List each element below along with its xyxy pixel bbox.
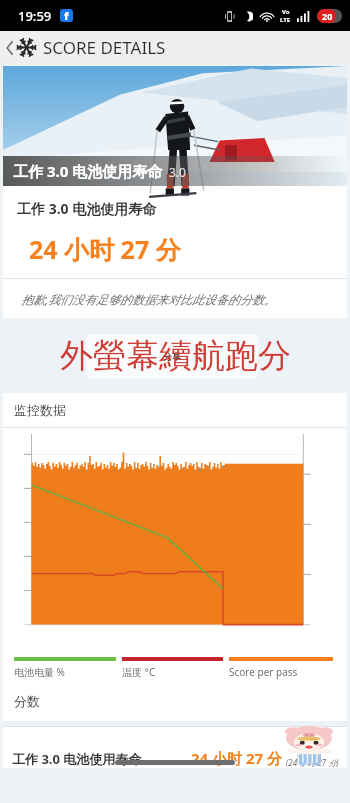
button[interactable]: 工作 3.0 电池使用寿命 [3,748,347,768]
staticText: 工作 3.0 电池使用寿命 [12,750,142,768]
staticText: 分享 [163,351,181,362]
button[interactable]: 分享 [86,334,258,379]
staticText: Score per pass [229,665,298,679]
staticText: 温度 °C [122,665,156,679]
staticText: 24 小时 27 分 [191,748,283,768]
staticText: 抱歉,我们没有足够的数据来对比此设备的分数。 [21,291,277,307]
button[interactable]: Back [0,31,350,64]
staticText: 外螢幕續航跑分 [60,335,291,377]
staticText: Vo [282,8,290,16]
staticText: 分数 [14,693,40,709]
staticText: 3.0 [169,164,186,180]
staticText: f [64,9,69,21]
staticText: 24 小时 27 分 [29,232,181,266]
staticText: 19:59 [18,7,52,25]
staticText: 工作 3.0 电池使用寿命 [13,161,163,181]
other: Back [4,39,16,57]
staticText: LTE [280,16,291,24]
staticText: (24 小时 27 分) [286,757,339,768]
staticText: 20 [322,10,333,22]
staticText: SCORE DETAILS [43,36,166,59]
staticText: 监控数据 [14,402,66,418]
staticText: 电池电量 % [14,665,65,679]
staticText: 工作 3.0 电池使用寿命 [17,199,157,218]
